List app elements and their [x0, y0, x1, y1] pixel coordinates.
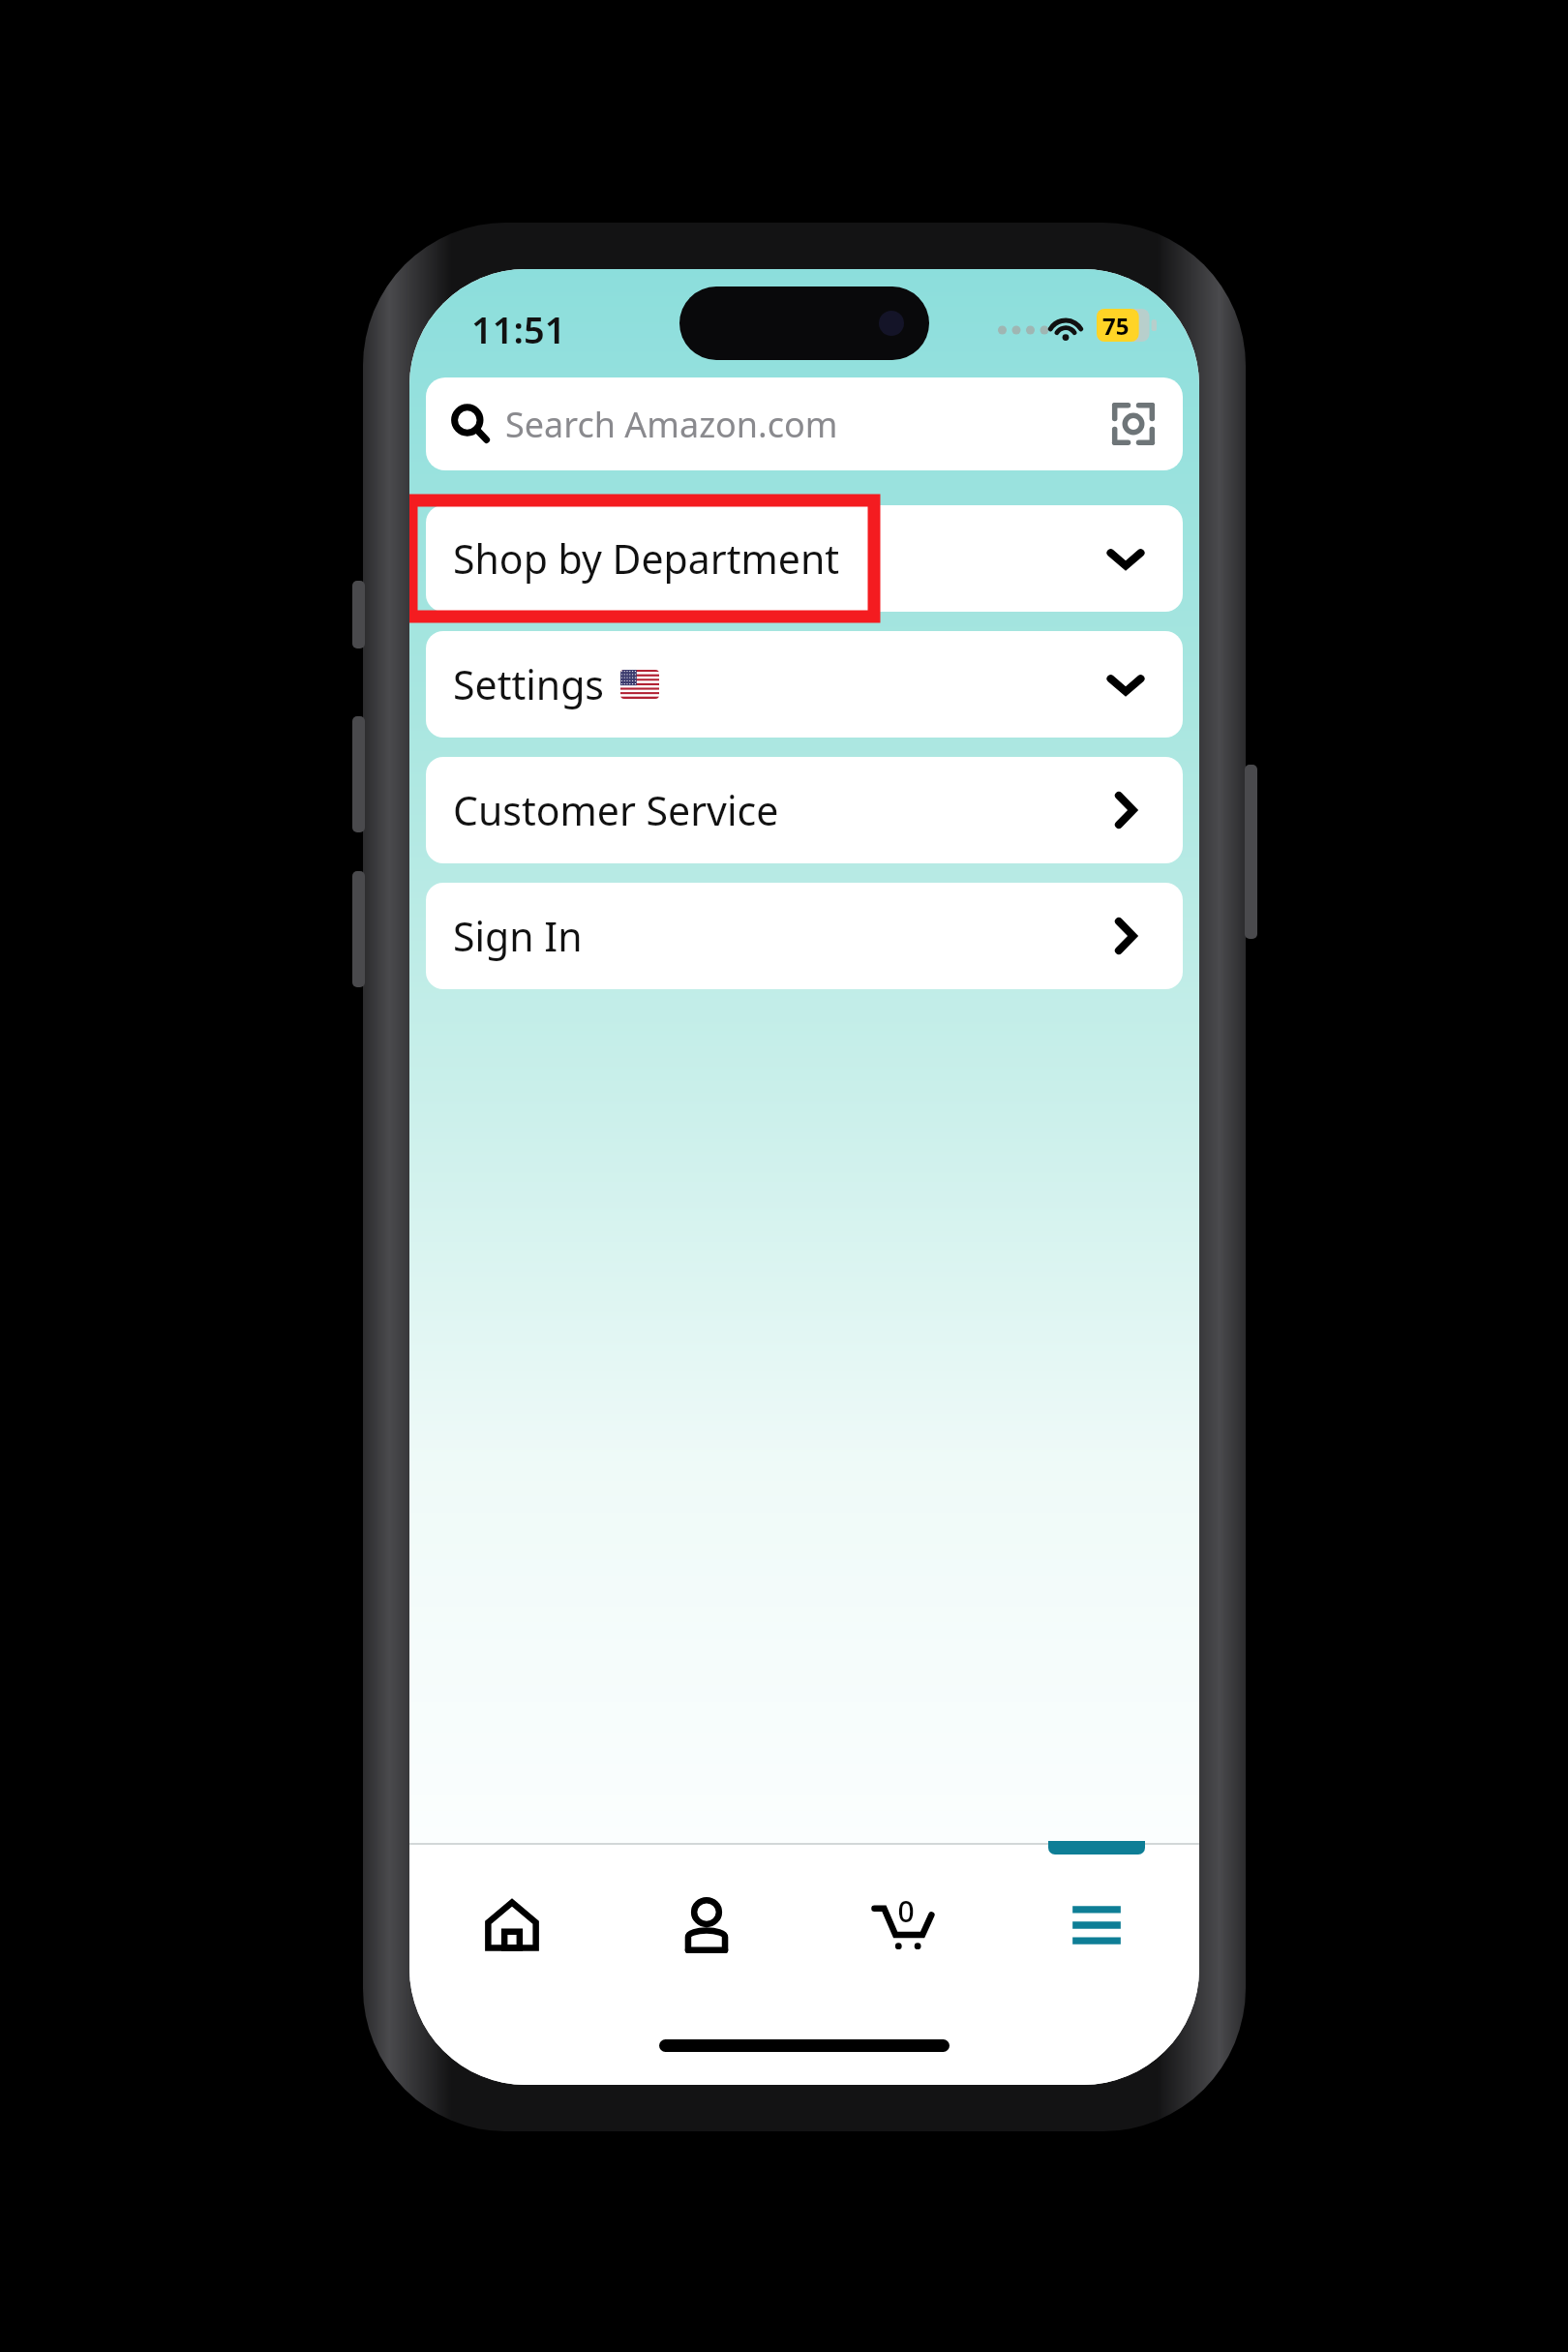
button[interactable]: Settings: [426, 631, 1183, 738]
staticText: 11:51: [471, 304, 566, 354]
staticText: 0: [897, 1891, 915, 1931]
button[interactable]: Search Amazon.com: [426, 377, 1183, 470]
button[interactable]: Scan with camera: [1111, 402, 1156, 446]
button[interactable]: Sign In: [426, 883, 1183, 989]
button[interactable]: Home: [420, 1843, 604, 2007]
staticText: Shop by Department: [453, 531, 840, 586]
staticText: Search Amazon.com: [505, 401, 838, 448]
button[interactable]: Shop by Department: [426, 505, 1183, 612]
button[interactable]: Customer Service: [426, 757, 1183, 863]
staticText: Settings: [453, 657, 605, 711]
button[interactable]: Account: [615, 1843, 799, 2007]
staticText: Customer Service: [453, 783, 779, 837]
staticText: 75: [1102, 310, 1130, 342]
staticText: Sign In: [453, 909, 583, 963]
button[interactable]: Menu: [1005, 1843, 1189, 2007]
button[interactable]: Cart, 0 items: [810, 1843, 994, 2007]
